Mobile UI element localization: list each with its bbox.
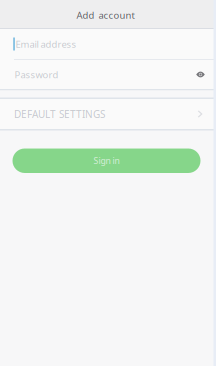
button[interactable]: Email address	[0, 29, 216, 59]
staticText: Sign in	[93, 155, 119, 167]
staticText: Password	[14, 68, 58, 81]
button[interactable]: Password	[0, 60, 216, 89]
button[interactable]: DEFAULT SETTINGS	[0, 99, 216, 129]
staticText: Add account	[76, 9, 134, 21]
staticText: DEFAULT SETTINGS	[14, 107, 105, 121]
button[interactable]: Sign in	[0, 130, 216, 173]
staticText: Email address	[15, 38, 76, 50]
